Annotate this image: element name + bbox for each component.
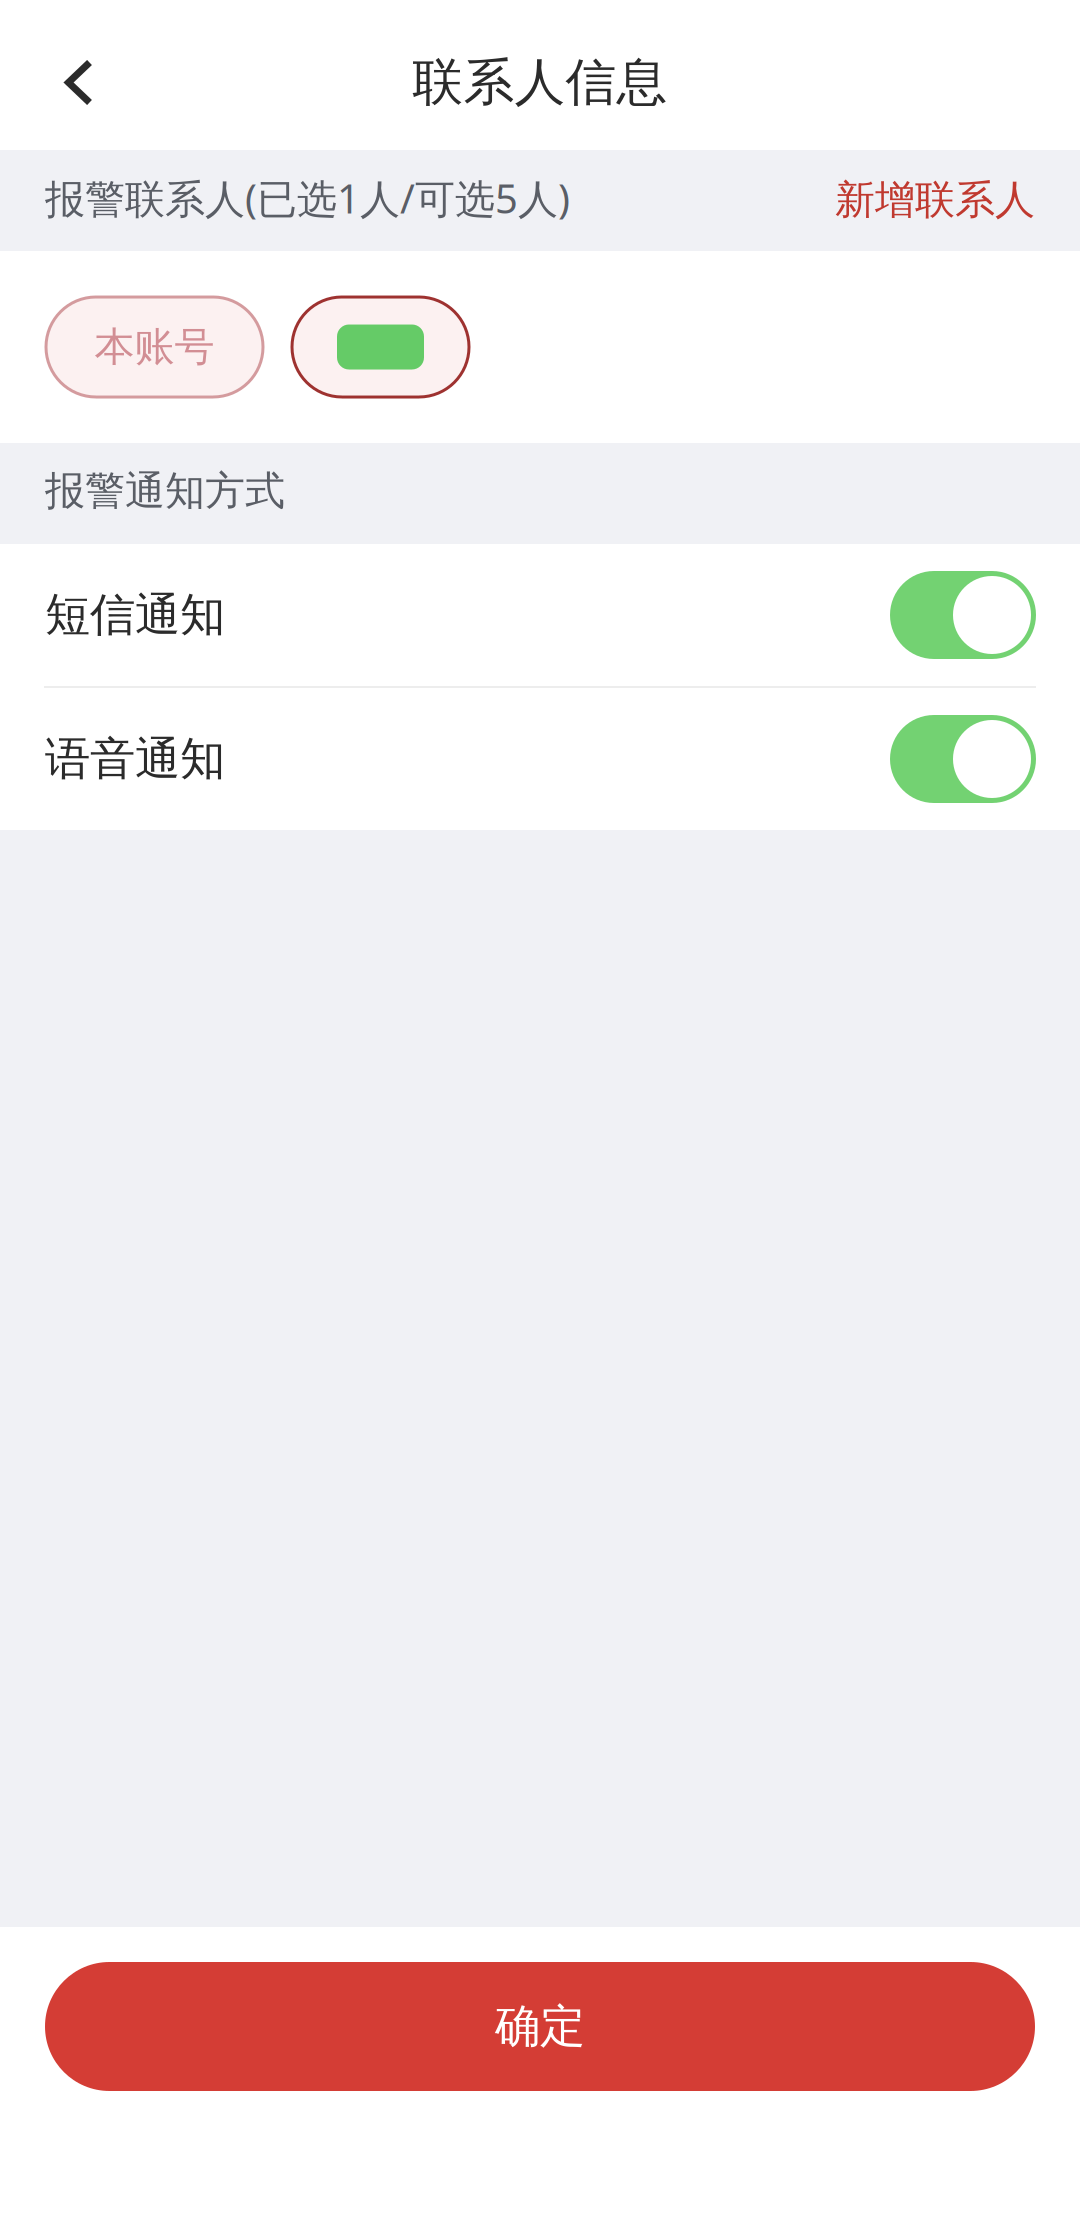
staticText: 新增联系人 [835, 175, 1035, 224]
staticText: 联系人信息 [412, 51, 667, 114]
staticText: 本账号 [94, 322, 214, 371]
staticText: 报警联系人(已选1人/可选5人) [45, 171, 570, 224]
button[interactable]: 语音通知 [0, 688, 1080, 830]
button[interactable]: 新增联系人 [835, 171, 1035, 224]
staticText: 确定 [495, 1999, 585, 2054]
button[interactable]: 返回 [16, 21, 142, 143]
staticText: 语音通知 [45, 731, 225, 787]
button[interactable]: 短信通知 [0, 544, 1080, 686]
button[interactable]: 联系人 [292, 297, 469, 397]
staticText: 报警通知方式 [45, 466, 285, 515]
button[interactable]: 确定 [45, 1962, 1035, 2091]
staticText: 短信通知 [45, 587, 225, 643]
button[interactable]: 本账号 [46, 297, 263, 397]
